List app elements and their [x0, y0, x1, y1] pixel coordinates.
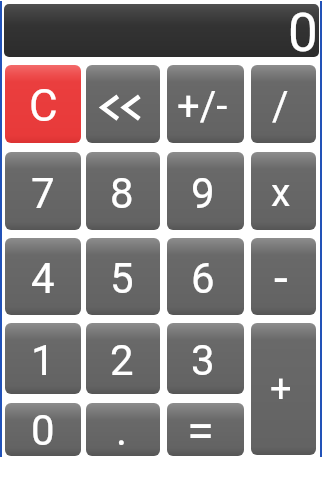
button[interactable]: 3	[167, 323, 244, 394]
button[interactable]: 0	[5, 403, 81, 456]
staticText: 4	[31, 254, 55, 303]
staticText: 6	[191, 254, 215, 303]
staticText: 1	[31, 336, 55, 385]
button[interactable]: .	[86, 403, 160, 456]
staticText: 0	[31, 406, 55, 455]
button[interactable]: 4	[5, 238, 81, 315]
button[interactable]: -	[251, 238, 316, 315]
button[interactable]: =	[167, 403, 244, 456]
staticText: 7	[31, 169, 55, 218]
staticText: =	[187, 403, 214, 455]
staticText: 0	[288, 2, 318, 55]
button[interactable]: +	[251, 323, 316, 455]
staticText: 2	[110, 336, 134, 385]
staticText: +	[270, 367, 292, 412]
staticText: 3	[191, 336, 215, 385]
button[interactable]: +/-	[167, 65, 244, 143]
staticText: +/-	[177, 83, 228, 130]
button[interactable]: 5	[86, 238, 160, 315]
staticText: /	[272, 83, 289, 130]
button[interactable]: x	[251, 152, 316, 230]
button[interactable]: 1	[5, 323, 81, 394]
staticText: C	[29, 80, 58, 132]
button[interactable]: /	[251, 65, 316, 143]
staticText: 5	[110, 254, 134, 303]
staticText: x	[271, 170, 291, 216]
button[interactable]: 8	[86, 152, 160, 230]
staticText: 9	[191, 169, 215, 218]
button[interactable]	[4, 4, 319, 57]
button[interactable]: 9	[167, 152, 244, 230]
staticText: 8	[110, 169, 134, 218]
button[interactable]: 7	[5, 152, 81, 230]
button[interactable]	[86, 65, 160, 143]
button[interactable]: 2	[86, 323, 160, 394]
button[interactable]: C	[5, 65, 81, 143]
staticText: .	[116, 406, 128, 455]
staticText: -	[274, 249, 288, 308]
button[interactable]: 6	[167, 238, 244, 315]
